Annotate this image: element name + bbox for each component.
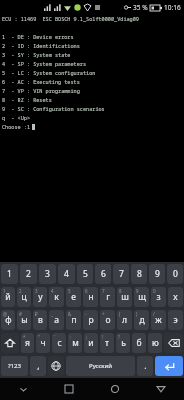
- staticText: ?: [118, 334, 120, 340]
- staticText: 5: [83, 268, 88, 280]
- button[interactable]: 3: [39, 264, 56, 284]
- button[interactable]: Shift: [1, 333, 19, 353]
- staticText: 3 - SY : System state: [2, 51, 71, 58]
- button[interactable]: п: [66, 310, 81, 330]
- button[interactable]: Русский: [66, 356, 135, 376]
- button[interactable]: 9: [149, 264, 165, 284]
- button[interactable]: Home: [92, 378, 138, 400]
- staticText: з: [156, 291, 161, 303]
- staticText: /: [153, 311, 155, 317]
- button[interactable]: т: [100, 333, 114, 353]
- staticText: ?123: [8, 362, 21, 370]
- button[interactable]: ш: [117, 287, 132, 307]
- staticText: 2: [19, 288, 22, 294]
- button[interactable]: ,: [30, 356, 46, 376]
- button[interactable]: ы: [17, 310, 31, 330]
- button[interactable]: н: [83, 287, 98, 307]
- button[interactable]: щ: [134, 287, 149, 307]
- staticText: н: [88, 291, 94, 303]
- staticText: 0: [153, 288, 156, 294]
- button[interactable]: ц: [17, 287, 31, 307]
- button[interactable]: 8: [131, 264, 147, 284]
- staticText: я: [25, 337, 30, 349]
- staticText: ): [136, 311, 138, 317]
- button[interactable]: е: [66, 287, 81, 307]
- staticText: щ: [138, 291, 146, 303]
- button[interactable]: 5: [77, 264, 93, 284]
- staticText: 10:16: [164, 3, 181, 12]
- button[interactable]: ч: [36, 333, 50, 353]
- button[interactable]: л: [117, 310, 132, 330]
- button[interactable]: 1: [1, 264, 18, 284]
- staticText: т: [105, 337, 109, 349]
- staticText: ь: [121, 337, 126, 349]
- staticText: г: [106, 291, 110, 303]
- staticText: !: [102, 334, 104, 340]
- staticText: р: [88, 314, 94, 326]
- staticText: 9: [155, 268, 160, 280]
- staticText: л: [122, 314, 127, 326]
- button[interactable]: а: [49, 310, 64, 330]
- staticText: ₽: [35, 311, 38, 317]
- staticText: в: [38, 314, 43, 326]
- button[interactable]: Change language: [48, 356, 64, 376]
- button[interactable]: и: [84, 333, 98, 353]
- button[interactable]: р: [83, 310, 98, 330]
- button[interactable]: у: [33, 287, 47, 307]
- staticText: q - <Up>: [2, 114, 31, 121]
- staticText: 5 - LC : System configuration: [2, 69, 96, 76]
- staticText: м: [72, 337, 79, 349]
- button[interactable]: 7: [113, 264, 129, 284]
- button[interactable]: я: [21, 333, 34, 353]
- button[interactable]: 0: [167, 264, 183, 284]
- staticText: @: [3, 311, 8, 317]
- staticText: #: [19, 311, 22, 317]
- staticText: :: [70, 334, 72, 340]
- staticText: ECU : 11469 ESC BOSCH 9.1_Solft0000_Vdia…: [2, 15, 139, 22]
- staticText: 9 - SC : Configuration scenarios: [2, 105, 105, 112]
- staticText: (: [119, 311, 121, 317]
- button[interactable]: 4: [58, 264, 75, 284]
- button[interactable]: э: [168, 310, 183, 330]
- staticText: *: [23, 334, 26, 340]
- button[interactable]: Enter: [155, 356, 183, 376]
- button[interactable]: х: [168, 287, 183, 307]
- button[interactable]: о: [100, 310, 115, 330]
- staticText: у: [38, 291, 43, 303]
- button[interactable]: с: [52, 333, 66, 353]
- staticText: ,: [37, 360, 40, 372]
- button[interactable]: Back: [138, 378, 184, 400]
- button[interactable]: ю: [148, 333, 162, 353]
- staticText: 6 - AC : Executing tests: [2, 78, 80, 85]
- staticText: _: [51, 311, 53, 317]
- button[interactable]: Recent apps: [46, 378, 92, 400]
- staticText: ю: [152, 337, 159, 349]
- button[interactable]: к: [49, 287, 64, 307]
- button[interactable]: з: [151, 287, 166, 307]
- button[interactable]: м: [68, 333, 82, 353]
- staticText: ": [38, 334, 40, 340]
- staticText: э: [173, 314, 178, 326]
- staticText: ч: [40, 337, 46, 349]
- staticText: б: [136, 337, 142, 349]
- staticText: и: [88, 337, 94, 349]
- button[interactable]: г: [100, 287, 115, 307]
- button[interactable]: й: [1, 287, 15, 307]
- button[interactable]: ж: [151, 310, 166, 330]
- button[interactable]: в: [33, 310, 47, 330]
- button[interactable]: 6: [95, 264, 111, 284]
- button[interactable]: д: [134, 310, 149, 330]
- button[interactable]: Backspace: [164, 333, 183, 353]
- button[interactable]: ь: [116, 333, 130, 353]
- button[interactable]: .: [137, 356, 153, 376]
- staticText: ж: [155, 314, 162, 326]
- button[interactable]: Hide keyboard: [0, 378, 46, 400]
- staticText: 4: [51, 288, 54, 294]
- staticText: 1: [7, 268, 12, 280]
- button[interactable]: 2: [20, 264, 37, 284]
- button[interactable]: ?123: [1, 356, 28, 376]
- staticText: 8: [119, 288, 122, 294]
- button[interactable]: ф: [1, 310, 15, 330]
- staticText: Русский: [89, 362, 112, 370]
- button[interactable]: б: [132, 333, 146, 353]
